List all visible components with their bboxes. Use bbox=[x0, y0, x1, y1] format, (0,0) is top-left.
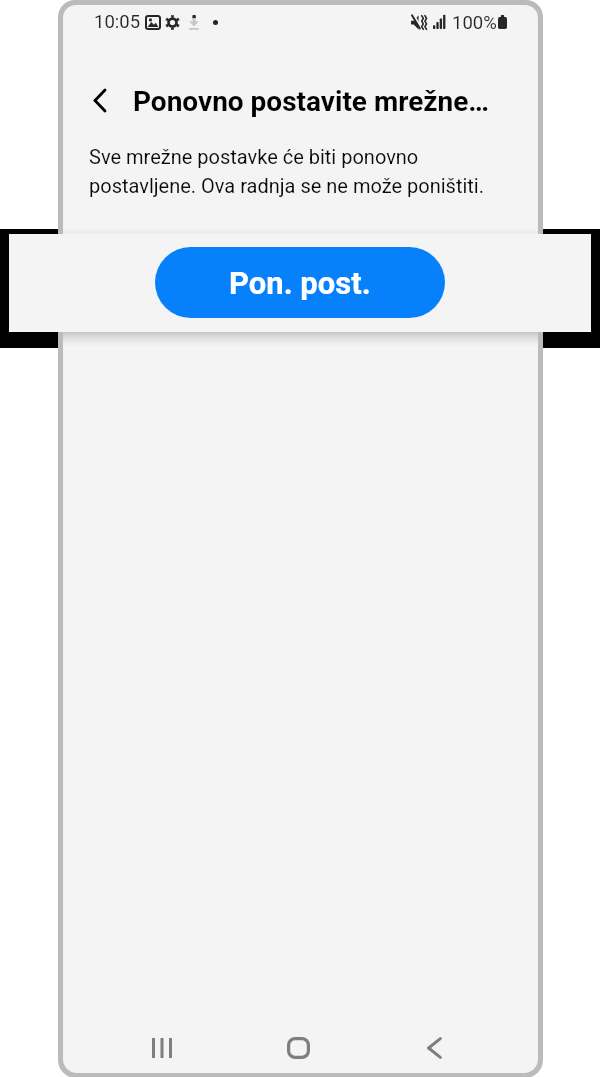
button[interactable]: Recent apps bbox=[140, 1026, 184, 1070]
staticText: Sve mrežne postavke će biti ponovno post… bbox=[89, 145, 509, 198]
button[interactable]: Back bbox=[78, 78, 122, 122]
button[interactable]: Home bbox=[276, 1026, 320, 1070]
staticText: 100% bbox=[452, 12, 497, 34]
staticText: Pon. post. bbox=[229, 265, 371, 301]
staticText: 10:05 bbox=[94, 11, 141, 33]
staticText: Ponovno postavite mrežne… bbox=[133, 85, 490, 118]
button[interactable]: Back bbox=[412, 1026, 456, 1070]
button[interactable]: Pon. post. bbox=[155, 247, 445, 318]
